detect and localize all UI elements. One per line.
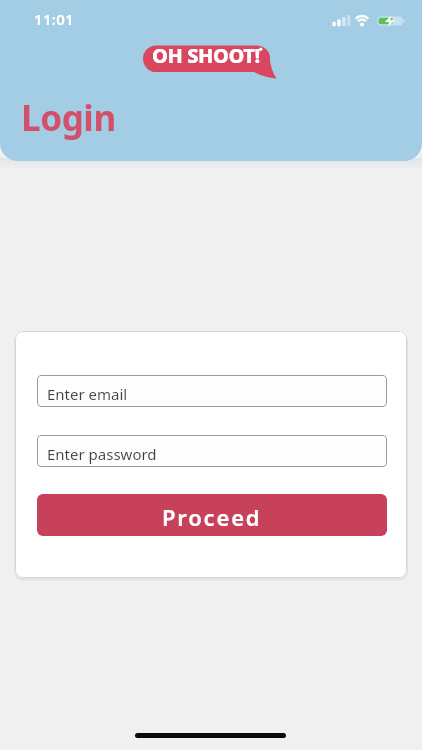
staticText: Enter email xyxy=(47,384,128,404)
staticText: Login xyxy=(21,94,116,142)
staticText: Proceed xyxy=(162,502,262,532)
staticText: Enter password xyxy=(47,444,157,464)
button[interactable]: Proceed xyxy=(37,494,387,536)
button[interactable]: Enter email xyxy=(37,375,387,407)
staticText: 11:01 xyxy=(34,9,74,29)
staticText: OH SHOOT! xyxy=(152,42,260,69)
button[interactable]: Enter password xyxy=(37,435,387,467)
